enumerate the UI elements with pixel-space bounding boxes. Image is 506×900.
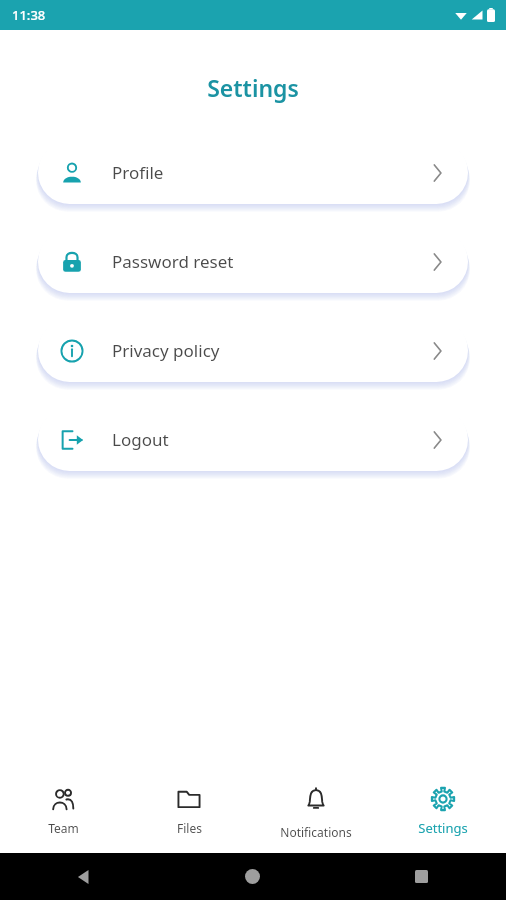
staticText: Privacy policy [112,339,433,362]
staticText: Notifications [280,824,352,840]
button[interactable]: Profile [38,141,468,204]
staticText: Settings [0,72,506,103]
button[interactable]: Home [245,869,260,884]
button[interactable]: Settings [379,775,506,837]
button[interactable]: Back [76,869,92,885]
button[interactable]: Logout [38,408,468,471]
button[interactable]: Recent apps [415,870,428,883]
staticText: Team [48,820,79,836]
button[interactable]: Notifications [252,775,379,840]
staticText: Logout [112,428,433,451]
staticText: Password reset [112,250,433,273]
staticText: Files [177,820,202,836]
button[interactable]: Files [126,775,252,836]
staticText: 11:38 [12,6,46,24]
button[interactable]: Password reset [38,230,468,293]
staticText: Profile [112,161,433,184]
button[interactable]: Privacy policy [38,319,468,382]
staticText: Settings [418,819,468,837]
button[interactable]: Team [0,775,126,836]
